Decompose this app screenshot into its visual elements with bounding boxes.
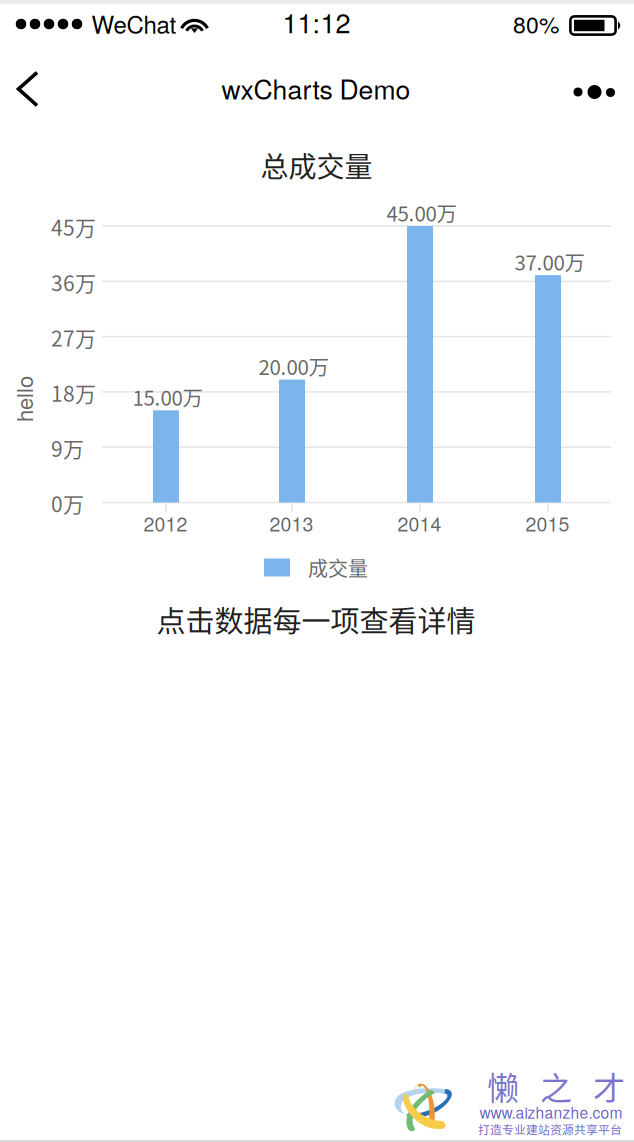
staticText: 45.00万 xyxy=(386,198,457,227)
staticText: 打造专业建站资源共享平台 xyxy=(478,1120,622,1138)
staticText: 0万 xyxy=(51,488,84,518)
staticText: hello xyxy=(0,383,46,415)
staticText: 成交量 xyxy=(308,553,368,582)
staticText: 45万 xyxy=(51,211,96,242)
staticText: 2012 xyxy=(143,509,187,537)
staticText: 36万 xyxy=(51,267,96,297)
staticText: wxCharts Demo xyxy=(221,69,410,107)
staticText: 2015 xyxy=(525,509,569,537)
staticText: 18万 xyxy=(51,377,96,408)
button[interactable]: More xyxy=(568,60,620,118)
staticText: www.aizhanzhe.com xyxy=(479,1101,622,1123)
staticText: 27万 xyxy=(51,322,96,352)
staticText: 37.00万 xyxy=(514,247,585,276)
staticText: 80% xyxy=(513,7,559,40)
staticText: 总成交量 xyxy=(260,145,372,185)
staticText: WeChat xyxy=(91,6,176,41)
staticText: 2014 xyxy=(397,509,441,537)
staticText: 9万 xyxy=(51,433,84,463)
staticText: 15.00万 xyxy=(132,382,203,412)
staticText: 20.00万 xyxy=(258,351,329,381)
staticText: 点击数据每一项查看详情 xyxy=(156,598,475,640)
button[interactable]: Back xyxy=(0,60,56,118)
button[interactable]: 2012 15.00万 xyxy=(153,410,179,502)
staticText: 2013 xyxy=(269,509,313,537)
staticText: 懒 之 才 xyxy=(487,1063,625,1109)
staticText: 11:12 xyxy=(282,2,350,41)
